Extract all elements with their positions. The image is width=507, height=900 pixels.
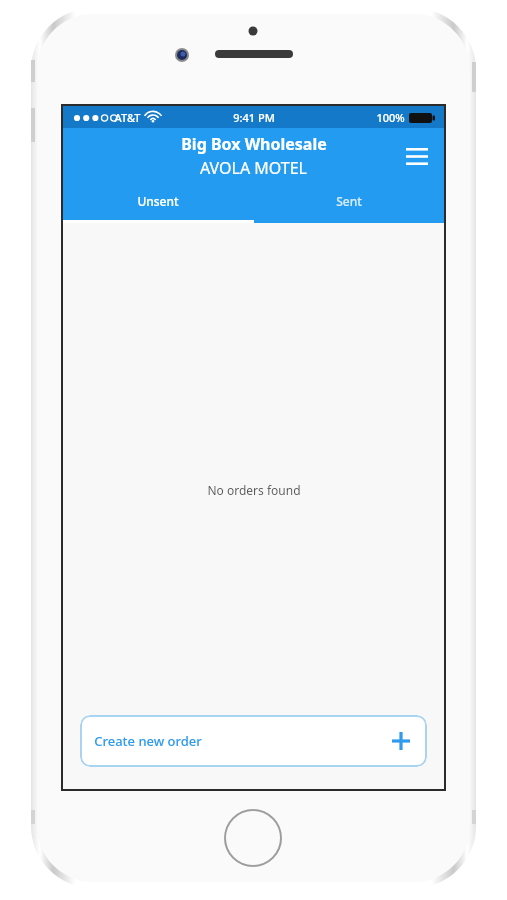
button[interactable]: Create new order <box>80 715 427 767</box>
staticText: AT&T <box>114 110 141 125</box>
staticText: Big Box Wholesale <box>181 133 327 155</box>
staticText: AVOLA MOTEL <box>200 157 307 179</box>
button[interactable]: Sent <box>253 184 444 223</box>
staticText: Sent <box>336 193 362 209</box>
staticText: No orders found <box>207 482 301 498</box>
staticText: 100% <box>376 110 405 125</box>
staticText: Unsent <box>137 193 179 209</box>
staticText: 9:41 PM <box>233 110 275 125</box>
staticText: Create new order <box>94 732 202 750</box>
button[interactable]: Unsent <box>63 184 253 223</box>
button[interactable]: Menu <box>396 135 438 177</box>
